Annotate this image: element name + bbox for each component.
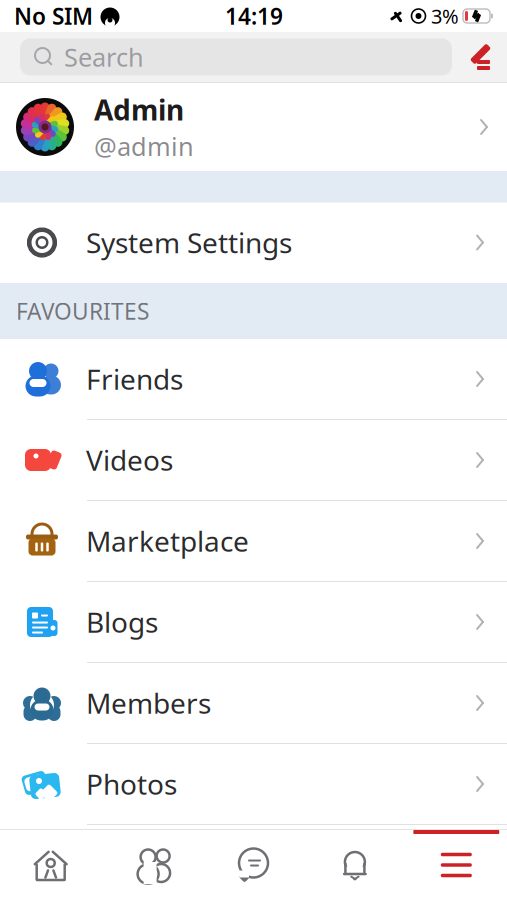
button[interactable]: People (101, 830, 203, 900)
button[interactable]: Search (20, 38, 452, 75)
staticText: Photos (86, 765, 177, 803)
button[interactable]: Members (0, 663, 507, 744)
button[interactable]: System Settings (0, 202, 507, 283)
staticText: Blogs (86, 603, 158, 641)
button[interactable]: Admin (0, 83, 507, 171)
button[interactable]: Photos (0, 744, 507, 825)
staticText: Videos (86, 441, 173, 479)
button[interactable]: Compose (452, 35, 507, 79)
button[interactable]: Friends (0, 339, 507, 420)
staticText: FAVOURITES (16, 296, 149, 326)
button[interactable]: Videos (0, 420, 507, 501)
button[interactable]: Notifications (304, 830, 406, 900)
staticText: Search (64, 40, 144, 74)
staticText: 14:19 (225, 1, 283, 31)
staticText: System Settings (86, 224, 292, 261)
staticText: @admin (94, 129, 194, 163)
staticText: Admin (94, 91, 184, 128)
staticText: Friends (86, 360, 183, 398)
button[interactable]: Home (0, 830, 101, 900)
button[interactable]: Menu (406, 830, 507, 900)
button[interactable]: Messages (203, 830, 304, 900)
staticText: No SIM (14, 1, 93, 31)
staticText: Members (86, 684, 211, 722)
button[interactable]: Marketplace (0, 501, 507, 582)
staticText: 3% (431, 3, 459, 29)
button[interactable]: Blogs (0, 582, 507, 663)
staticText: Marketplace (86, 522, 249, 560)
